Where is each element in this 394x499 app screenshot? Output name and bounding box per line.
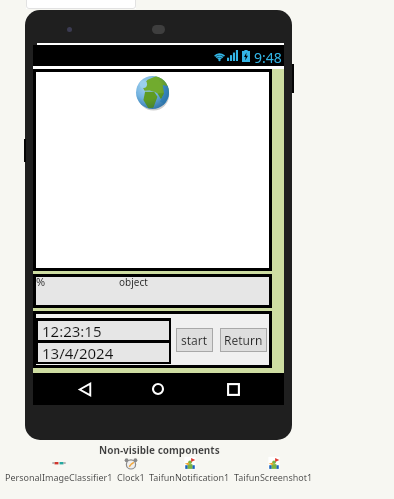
staticText: 9:48 — [254, 48, 282, 63]
button[interactable]: Return — [220, 328, 267, 352]
staticText: object — [119, 275, 148, 289]
staticText: 13/4/2024 — [42, 343, 114, 362]
staticText: start — [181, 332, 208, 348]
staticText: Clock1 — [117, 471, 145, 483]
staticText: TaifunNotification1 — [149, 471, 230, 483]
button[interactable]: Back — [66, 373, 104, 405]
staticText: Non-visible components — [99, 443, 220, 457]
button[interactable]: start — [176, 328, 213, 352]
staticText: TaifunScreenshot1 — [234, 471, 313, 483]
staticText: % — [36, 274, 46, 289]
staticText: PersonalImageClassifier1 — [5, 471, 113, 483]
button[interactable]: TaifunNotification1 — [149, 456, 230, 483]
button[interactable]: PersonalImageClassifier1 — [5, 456, 113, 483]
button[interactable]: Recent apps — [214, 373, 252, 405]
button[interactable]: Home — [139, 373, 177, 405]
button[interactable]: TaifunScreenshot1 — [234, 456, 313, 483]
staticText: Return — [224, 332, 263, 348]
button[interactable]: Clock1 — [117, 456, 145, 483]
staticText: 12:23:15 — [42, 321, 102, 340]
